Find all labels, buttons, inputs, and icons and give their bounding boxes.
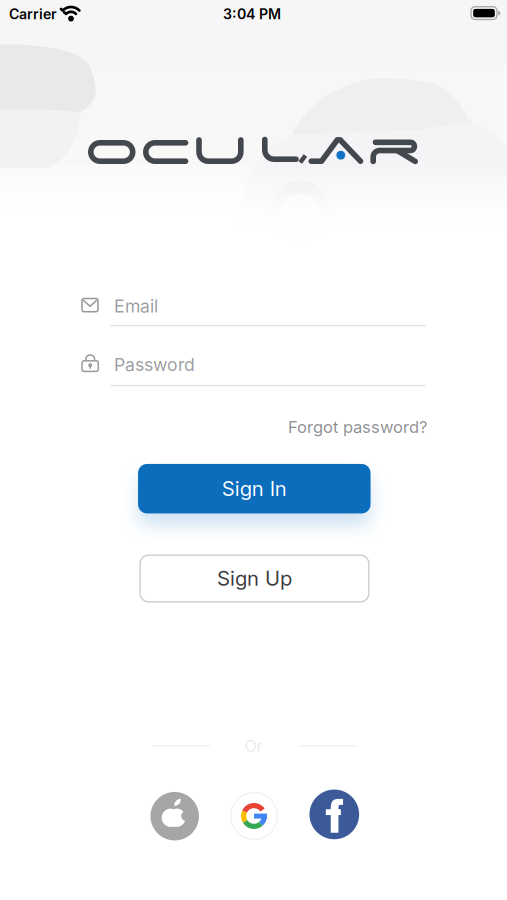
button[interactable]: Sign Up bbox=[139, 554, 369, 602]
button[interactable] bbox=[230, 792, 278, 840]
staticText: Sign Up bbox=[217, 566, 292, 590]
button[interactable] bbox=[309, 789, 359, 839]
staticText: Carrier bbox=[9, 6, 57, 22]
button[interactable]: Forgot password? bbox=[177, 412, 427, 442]
button[interactable]: Email bbox=[114, 286, 430, 326]
button[interactable] bbox=[150, 792, 199, 840]
staticText: 3:04 PM bbox=[223, 6, 281, 22]
button[interactable]: Password bbox=[114, 344, 430, 384]
staticText: Sign In bbox=[222, 477, 287, 501]
staticText: Password bbox=[114, 354, 195, 375]
staticText: Email bbox=[114, 296, 158, 316]
staticText: Forgot password? bbox=[288, 417, 427, 437]
button[interactable]: Sign In bbox=[138, 464, 371, 513]
staticText: Or bbox=[244, 737, 262, 755]
